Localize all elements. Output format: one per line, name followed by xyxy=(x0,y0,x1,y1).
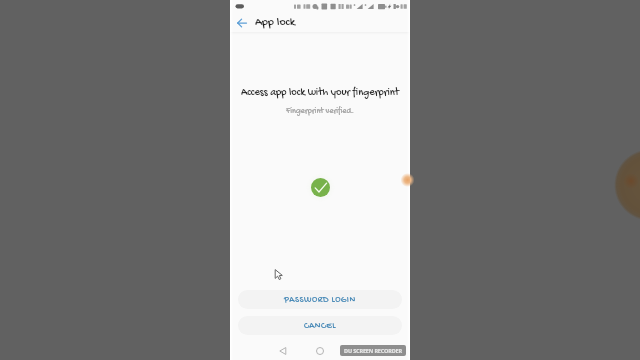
button[interactable]: Back xyxy=(276,344,289,357)
button[interactable]: CANCEL xyxy=(238,316,402,335)
button[interactable]: PASSWORD LOGIN xyxy=(238,290,402,309)
button[interactable]: Home xyxy=(313,344,326,357)
staticText: Fingerprint verified. xyxy=(230,107,410,117)
staticText: App lock xyxy=(255,16,296,30)
button[interactable]: Back xyxy=(232,13,252,33)
staticText: CANCEL xyxy=(304,321,336,331)
button[interactable]: DU SCREEN RECORDER xyxy=(340,345,406,356)
staticText: PASSWORD LOGIN xyxy=(284,295,356,305)
staticText: Access app lock with your fingerprint xyxy=(230,87,410,99)
staticText: DU SCREEN RECORDER xyxy=(344,347,402,354)
